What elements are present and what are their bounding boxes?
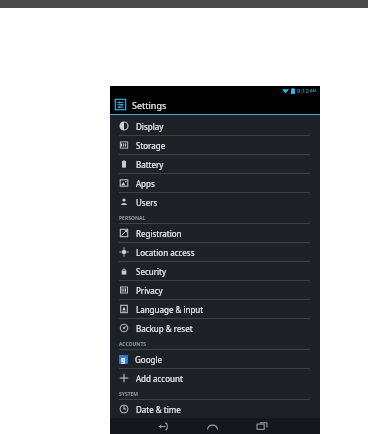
staticText: Location access [136,247,195,258]
staticText: Date & time [136,404,181,415]
staticText: Apps [136,178,155,189]
button[interactable]: Registration [110,224,320,243]
button[interactable]: Battery [110,155,320,174]
button[interactable]: Apps [110,174,320,193]
staticText: Add account [136,373,183,384]
staticText: ACCOUNTS [119,341,147,348]
button[interactable]: Privacy [110,281,320,300]
button[interactable]: Storage [110,136,320,155]
button[interactable]: Users [110,193,320,211]
button[interactable]: g [110,350,320,369]
button[interactable]: Settings [110,95,320,114]
button[interactable]: Add account [110,369,320,387]
staticText: Backup & reset [136,323,193,334]
staticText: Storage [136,140,166,151]
staticText: Google [135,354,162,365]
button[interactable]: Home [200,418,224,434]
staticText: Language & input [136,304,204,315]
staticText: g [121,355,126,364]
button[interactable]: Recent apps [250,418,274,434]
staticText: 9:12 [297,87,309,95]
staticText: Privacy [136,285,163,296]
staticText: Users [136,197,158,208]
staticText: Settings [132,99,167,111]
button[interactable]: Display [110,117,320,136]
staticText: PERSONAL [119,215,146,222]
staticText: SYSTEM [119,391,139,398]
button[interactable]: Date & time [110,400,320,418]
staticText: Registration [136,228,182,239]
button[interactable]: Security [110,262,320,281]
staticText: Display [136,121,164,132]
staticText: Security [136,266,167,277]
button[interactable]: Back [150,418,174,434]
staticText: Battery [136,159,164,170]
staticText: AM [310,88,317,93]
button[interactable]: Language & input [110,300,320,319]
button[interactable]: Location access [110,243,320,262]
button[interactable]: Backup & reset [110,319,320,337]
